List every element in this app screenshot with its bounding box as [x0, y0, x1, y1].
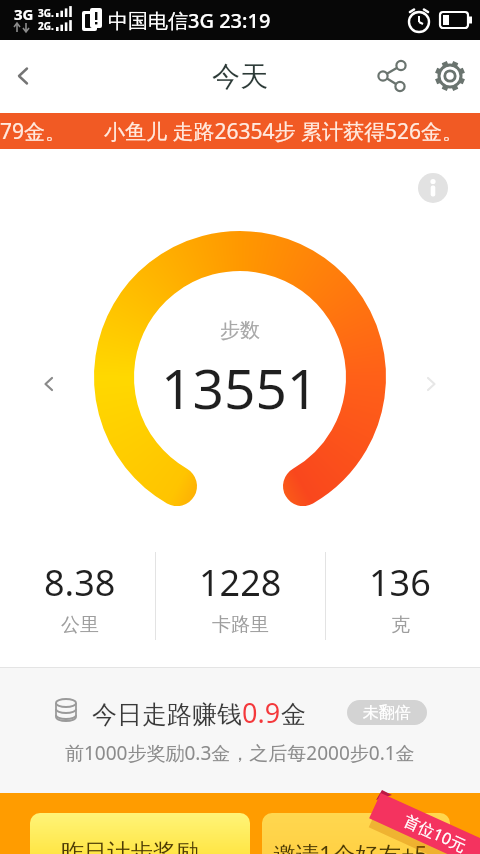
- staticText: 公里: [61, 613, 99, 637]
- button[interactable]: [374, 57, 411, 94]
- button[interactable]: [418, 173, 448, 203]
- staticText: 1228: [199, 558, 282, 607]
- staticText: 3G: [14, 4, 34, 24]
- staticText: 步数: [220, 318, 260, 343]
- staticText: 今日走路赚钱: [92, 699, 242, 729]
- staticText: 2G.: [38, 19, 54, 33]
- button[interactable]: [415, 368, 447, 400]
- staticText: 未翻倍: [363, 703, 411, 723]
- button[interactable]: 首位10元: [369, 793, 480, 854]
- staticText: 136: [369, 558, 431, 607]
- staticText: 卡路里: [212, 613, 269, 637]
- staticText: 金: [281, 699, 306, 729]
- staticText: 8.38: [44, 558, 116, 607]
- staticText: 昨日计步奖励: [61, 838, 199, 854]
- staticText: 3G.: [38, 6, 54, 20]
- button[interactable]: [431, 57, 468, 94]
- button[interactable]: 邀请1个好友+5金: [262, 813, 450, 854]
- staticText: 中国电信3G 23:19: [108, 7, 271, 34]
- button[interactable]: [33, 368, 65, 400]
- staticText: 13551: [161, 350, 319, 425]
- button[interactable]: [0, 113, 480, 149]
- button[interactable]: [6, 58, 42, 94]
- staticText: 今天: [212, 59, 268, 94]
- button[interactable]: [0, 685, 480, 735]
- staticText: 79金。: [0, 117, 67, 146]
- staticText: 小鱼儿 走路26354步 累计获得526金。: [104, 117, 464, 146]
- staticText: 首位10元: [400, 809, 470, 854]
- staticText: 0.9: [242, 694, 281, 724]
- staticText: 邀请1个好友+5金: [273, 838, 450, 854]
- staticText: 克: [391, 613, 410, 637]
- button[interactable]: 昨日计步奖励: [30, 813, 250, 854]
- staticText: 前1000步奖励0.3金，之后每2000步0.1金: [65, 740, 415, 766]
